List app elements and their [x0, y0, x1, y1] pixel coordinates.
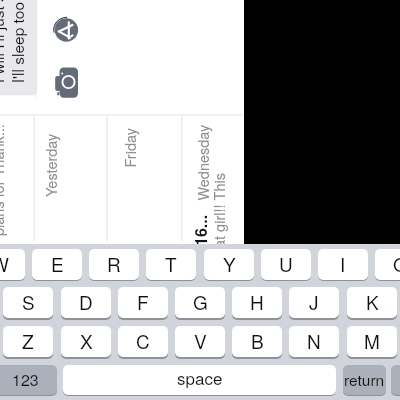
staticText: W	[0, 250, 9, 277]
staticText: N	[307, 327, 321, 354]
button[interactable]: S	[3, 287, 53, 318]
button[interactable]: return	[343, 365, 386, 395]
staticText: H	[250, 288, 264, 315]
button[interactable]: R	[89, 249, 139, 280]
staticText: V	[194, 327, 207, 354]
button[interactable]: I	[318, 249, 368, 280]
staticText: return	[344, 368, 385, 390]
button[interactable]: 123	[0, 365, 57, 395]
button[interactable]: F	[118, 287, 168, 318]
button[interactable]	[391, 365, 400, 395]
button[interactable]: G	[175, 287, 225, 318]
staticText: J	[309, 288, 319, 315]
staticText: I	[340, 250, 346, 277]
button[interactable]: K	[347, 287, 397, 318]
button[interactable]: O	[375, 249, 400, 280]
staticText: M	[364, 327, 380, 354]
button[interactable]: D	[61, 287, 111, 318]
button[interactable]: T	[146, 249, 196, 280]
staticText: S	[22, 288, 35, 315]
button[interactable]: Z	[3, 326, 53, 357]
button[interactable]: Y	[204, 249, 254, 280]
staticText: C	[136, 327, 150, 354]
staticText: G	[193, 288, 208, 315]
staticText: 123	[12, 368, 39, 391]
staticText: K	[366, 288, 379, 315]
button[interactable]: U	[261, 249, 311, 280]
button[interactable]: V	[175, 326, 225, 357]
staticText: F	[137, 288, 149, 315]
button[interactable]: X	[61, 326, 111, 357]
button[interactable]: E	[32, 249, 82, 280]
staticText: T	[165, 250, 177, 277]
staticText: O	[393, 250, 400, 277]
button[interactable]: N	[289, 326, 339, 357]
staticText: Y	[223, 250, 236, 277]
button[interactable]: space	[63, 365, 336, 395]
staticText: U	[279, 250, 293, 277]
button[interactable]: App Store	[54, 17, 80, 43]
staticText: B	[251, 327, 264, 354]
button[interactable]: B	[232, 326, 282, 357]
staticText: D	[79, 288, 93, 315]
staticText: E	[51, 250, 64, 277]
staticText: Z	[22, 327, 34, 354]
button[interactable]: H	[232, 287, 282, 318]
staticText: space	[177, 365, 223, 389]
button[interactable]: C	[118, 326, 168, 357]
staticText: R	[107, 250, 121, 277]
button[interactable]: Camera	[54, 64, 82, 101]
button[interactable]: M	[347, 326, 397, 357]
button[interactable]: J	[289, 287, 339, 318]
button[interactable]: W	[0, 249, 25, 280]
staticText: X	[80, 327, 93, 354]
